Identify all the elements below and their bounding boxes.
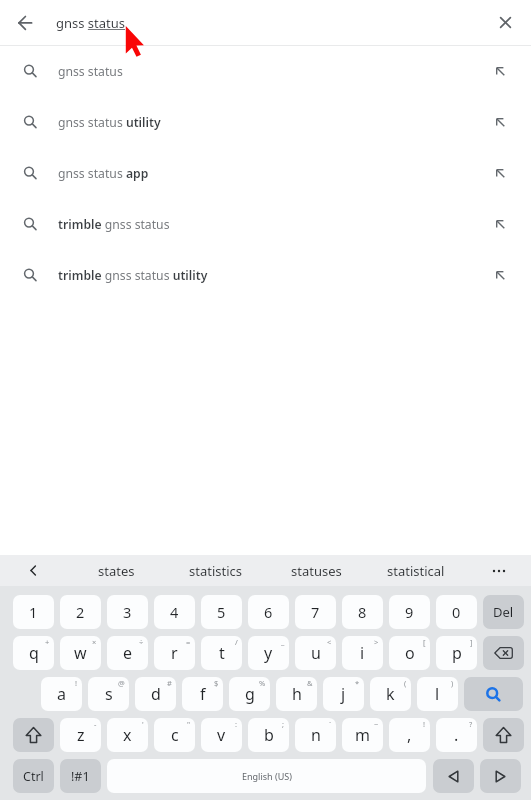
button[interactable]	[483, 199, 518, 250]
button[interactable]: 8	[342, 595, 383, 629]
staticText: (	[404, 678, 407, 688]
button[interactable]: .	[436, 718, 477, 752]
button[interactable]: states	[66, 555, 166, 586]
button[interactable]: gnss status utility	[0, 97, 531, 148]
staticText: %	[259, 678, 266, 688]
staticText: p	[452, 642, 462, 664]
staticText: ]	[470, 637, 473, 647]
button[interactable]: r	[154, 636, 195, 670]
staticText: 9	[405, 602, 414, 622]
button[interactable]: h	[276, 677, 317, 711]
staticText: "	[187, 719, 191, 729]
button[interactable]: gnss status app	[0, 148, 531, 199]
button[interactable]: ,	[389, 718, 430, 752]
staticText: 3	[123, 602, 132, 622]
button[interactable]: g	[229, 677, 270, 711]
button[interactable]	[500, 17, 511, 28]
button[interactable]: c	[154, 718, 195, 752]
button[interactable]: l	[417, 677, 458, 711]
button[interactable]	[483, 97, 518, 148]
staticText: i	[360, 642, 365, 664]
button[interactable]: t	[201, 636, 242, 670]
button[interactable]: b	[248, 718, 289, 752]
button[interactable]: English (US)	[107, 759, 426, 793]
button[interactable]: statistical	[366, 555, 466, 586]
staticText: =	[186, 637, 191, 647]
button[interactable]: a	[41, 677, 82, 711]
button[interactable]: p	[436, 636, 477, 670]
button[interactable]	[0, 555, 66, 586]
button[interactable]	[483, 718, 524, 752]
button[interactable]: 6	[248, 595, 289, 629]
staticText: +	[45, 637, 50, 647]
button[interactable]: q	[13, 636, 54, 670]
staticText: English (US)	[242, 770, 292, 782]
button[interactable]: i	[342, 636, 383, 670]
button[interactable]: 5	[201, 595, 242, 629]
staticText: y	[264, 642, 273, 664]
button[interactable]	[13, 718, 54, 752]
staticText: 2	[76, 602, 85, 622]
staticText: statuses	[291, 562, 342, 580]
staticText: n	[311, 724, 321, 746]
button[interactable]	[483, 250, 518, 301]
button[interactable]: d	[135, 677, 176, 711]
button[interactable]: x	[107, 718, 148, 752]
button[interactable]: gnss status	[0, 46, 531, 97]
staticText: ?	[469, 719, 473, 729]
button[interactable]: w	[60, 636, 101, 670]
button[interactable]: 4	[154, 595, 195, 629]
button[interactable]: v	[201, 718, 242, 752]
staticText: d	[151, 683, 161, 705]
staticText: 6	[264, 602, 273, 622]
staticText: states	[98, 562, 135, 580]
button[interactable]: 1	[13, 595, 54, 629]
staticText: l	[435, 683, 440, 705]
staticText: Del	[493, 603, 514, 621]
staticText: gnss status	[56, 14, 126, 32]
button[interactable]: y	[248, 636, 289, 670]
button[interactable]: Del	[483, 595, 524, 629]
staticText: statistical	[387, 562, 445, 580]
button[interactable]: m	[342, 718, 383, 752]
button[interactable]: o	[389, 636, 430, 670]
button[interactable]	[17, 15, 33, 31]
button[interactable]: !#1	[60, 759, 101, 793]
button[interactable]: e	[107, 636, 148, 670]
button[interactable]: s	[88, 677, 129, 711]
button[interactable]: u	[295, 636, 336, 670]
staticText: gnss status	[58, 63, 123, 80]
button[interactable]	[483, 636, 524, 670]
button[interactable]: 2	[60, 595, 101, 629]
staticText: ÷	[139, 637, 144, 647]
button[interactable]: n	[295, 718, 336, 752]
button[interactable]	[433, 759, 474, 793]
button[interactable]	[464, 677, 523, 711]
button[interactable]: f	[182, 677, 223, 711]
button[interactable]	[483, 148, 518, 199]
button[interactable]: 3	[107, 595, 148, 629]
button[interactable]: k	[370, 677, 411, 711]
button[interactable]: 9	[389, 595, 430, 629]
button[interactable]: z	[60, 718, 101, 752]
button[interactable]	[466, 555, 531, 586]
button[interactable]: 7	[295, 595, 336, 629]
staticText: Ctrl	[23, 768, 44, 785]
staticText: u	[311, 642, 321, 664]
staticText: <	[327, 637, 332, 647]
staticText: '	[142, 719, 144, 729]
button[interactable]: 0	[436, 595, 477, 629]
button[interactable]	[483, 46, 518, 97]
staticText: `	[329, 719, 332, 729]
button[interactable]	[480, 759, 521, 793]
button[interactable]: j	[323, 677, 364, 711]
button[interactable]: Ctrl	[13, 759, 54, 793]
staticText: c	[171, 724, 179, 746]
staticText: 5	[217, 602, 226, 622]
staticText: h	[292, 683, 302, 705]
button[interactable]: statuses	[266, 555, 366, 586]
button[interactable]: statistics	[166, 555, 266, 586]
staticText: trimble gnss status	[58, 216, 170, 233]
button[interactable]: trimble gnss status	[0, 199, 531, 250]
button[interactable]: trimble gnss status utility	[0, 250, 531, 301]
